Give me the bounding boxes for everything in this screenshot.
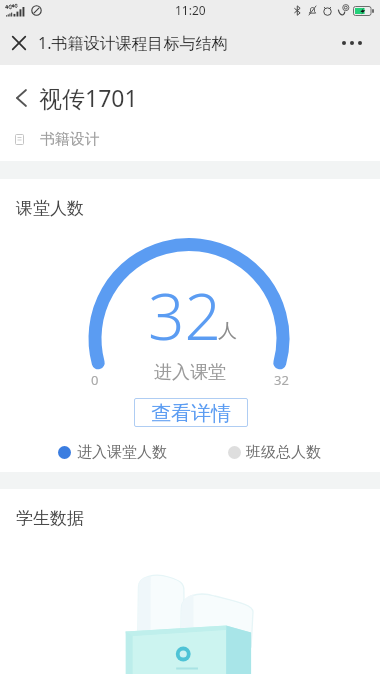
staticText: 0: [91, 371, 99, 389]
button[interactable]: 书籍设计: [0, 119, 380, 159]
staticText: 进入课堂人数: [77, 443, 167, 462]
staticText: 11:20: [175, 2, 206, 18]
staticText: 查看详情: [151, 401, 231, 426]
staticText: 班级总人数: [246, 443, 321, 462]
button[interactable]: 查看详情: [134, 398, 248, 427]
staticText: 学生数据: [16, 508, 84, 529]
staticText: 书籍设计: [40, 130, 100, 149]
button[interactable]: More options: [330, 21, 374, 64]
staticText: 32: [148, 272, 222, 359]
button[interactable]: Back: [0, 73, 39, 123]
staticText: 进入课堂: [154, 361, 226, 384]
button[interactable]: Close: [0, 21, 38, 64]
staticText: 人: [218, 319, 237, 343]
button[interactable]: 视传1701: [39, 82, 138, 113]
staticText: 1.书籍设计课程目标与结构: [38, 32, 228, 54]
staticText: 课堂人数: [16, 198, 84, 219]
staticText: 32: [274, 371, 289, 389]
